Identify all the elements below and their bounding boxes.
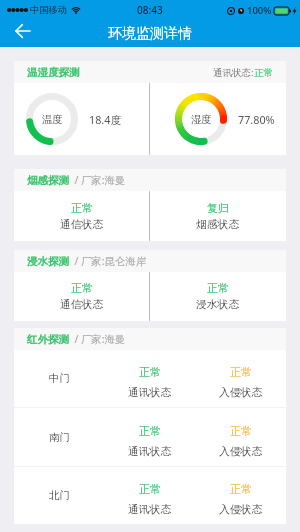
button[interactable]: 南门 [14, 408, 286, 466]
staticText: 通讯状态 [128, 386, 172, 400]
staticText: 环境监测详情 [108, 25, 192, 43]
staticText: 正常 [139, 365, 161, 379]
staticText: 浸水状态 [196, 298, 240, 312]
staticText: 正常 [139, 482, 161, 496]
staticText: 南门 [49, 431, 70, 444]
staticText: 红外探测 [27, 333, 69, 346]
staticText: 通讯状态: [213, 66, 254, 79]
staticText: 北门 [49, 489, 70, 502]
staticText: 入侵状态 [219, 386, 263, 400]
staticText: 烟感探测 [27, 174, 69, 187]
staticText: 温度 [42, 113, 63, 126]
staticText: 通信状态 [60, 218, 104, 232]
staticText: 烟感状态 [196, 218, 240, 232]
staticText: 77.80% [238, 112, 275, 127]
staticText: 正常 [71, 201, 93, 215]
staticText: 08:43 [137, 3, 163, 17]
staticText: 18.4度 [89, 112, 122, 127]
staticText: 正常 [230, 365, 252, 379]
staticText: 通讯状态 [128, 503, 172, 517]
staticText: / 厂家:海曼 [69, 173, 126, 187]
staticText: 入侵状态 [219, 503, 263, 517]
staticText: 正常 [71, 281, 93, 295]
staticText: 中门 [49, 372, 70, 385]
staticText: 正常 [230, 424, 252, 438]
staticText: 中国移动 [30, 4, 67, 16]
staticText: / 厂家:昆仑海岸 [69, 254, 147, 268]
staticText: 通信状态 [60, 298, 104, 312]
staticText: / 厂家:海曼 [69, 332, 126, 346]
staticText: 温湿度探测 [27, 66, 80, 79]
staticText: 100% [247, 4, 272, 17]
staticText: 复归 [207, 201, 229, 215]
button[interactable]: 北门 [14, 467, 286, 524]
staticText: 正常 [254, 67, 273, 79]
staticText: 正常 [207, 281, 229, 295]
button[interactable]: 中门 [14, 350, 286, 407]
staticText: 正常 [139, 424, 161, 438]
staticText: 正常 [230, 482, 252, 496]
staticText: 浸水探测 [27, 255, 69, 268]
button[interactable]: Back [11, 20, 35, 47]
staticText: 湿度 [191, 113, 212, 126]
staticText: 入侵状态 [219, 445, 263, 459]
staticText: 通讯状态 [128, 445, 172, 459]
